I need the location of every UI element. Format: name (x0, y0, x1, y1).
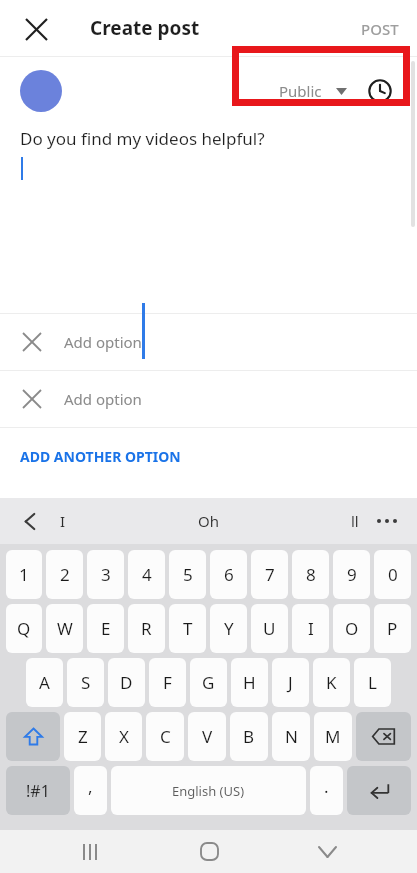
button[interactable]: X (105, 712, 142, 761)
button[interactable]: Recents (62, 830, 118, 873)
button[interactable]: L (354, 658, 391, 707)
staticText: Y (224, 617, 234, 640)
button[interactable]: 3 (87, 550, 124, 599)
staticText: Z (78, 725, 88, 748)
staticText: 3 (101, 563, 111, 586)
button[interactable]: B (230, 712, 268, 761)
button[interactable]: J (272, 658, 309, 707)
button[interactable]: !#1 (6, 766, 70, 815)
staticText: Oh (198, 511, 219, 531)
staticText: S (81, 671, 91, 694)
button[interactable]: Remove option (0, 371, 417, 427)
staticText: L (368, 671, 377, 694)
staticText: !#1 (26, 780, 50, 802)
button[interactable]: English (US) (111, 766, 306, 815)
button[interactable]: I (292, 604, 329, 653)
staticText: . (324, 775, 329, 798)
button[interactable]: Remove option (14, 324, 50, 360)
button[interactable]: Shift (6, 712, 60, 761)
button[interactable]: P (374, 604, 411, 653)
button[interactable]: S (67, 658, 104, 707)
button[interactable]: Y (210, 604, 247, 653)
staticText: H (243, 671, 256, 694)
staticText: R (141, 617, 152, 640)
staticText: 4 (142, 563, 152, 586)
button[interactable]: ADD ANOTHER OPTION (0, 428, 417, 485)
button[interactable]: D (108, 658, 145, 707)
button[interactable]: 8 (292, 550, 329, 599)
button[interactable]: H (231, 658, 268, 707)
staticText: Add option (64, 332, 142, 352)
button[interactable]: Oh (198, 498, 219, 544)
staticText: W (57, 617, 73, 640)
staticText: A (39, 671, 50, 694)
button[interactable]: 1 (6, 550, 42, 599)
staticText: C (160, 725, 171, 748)
button[interactable]: Q (6, 604, 42, 653)
button[interactable]: More options (369, 503, 405, 539)
button[interactable]: 0 (374, 550, 411, 599)
staticText: M (325, 725, 341, 748)
staticText: D (120, 671, 133, 694)
staticText: Add option (64, 389, 142, 409)
staticText: U (263, 617, 276, 640)
button[interactable]: 4 (128, 550, 165, 599)
button[interactable]: R (128, 604, 165, 653)
staticText: X (119, 725, 129, 748)
button[interactable]: Do you find my videos helpful? (0, 121, 417, 313)
button[interactable]: K (313, 658, 350, 707)
button[interactable]: G (190, 658, 227, 707)
staticText: Do you find my videos helpful? (20, 127, 265, 150)
staticText: ll (351, 511, 359, 531)
button[interactable]: Enter (347, 766, 411, 815)
button[interactable]: V (188, 712, 226, 761)
staticText: English (US) (172, 782, 245, 800)
button[interactable]: C (146, 712, 184, 761)
button[interactable]: M (314, 712, 352, 761)
button[interactable]: Remove option (14, 381, 50, 417)
button[interactable]: 2 (46, 550, 83, 599)
button[interactable]: Backspace (356, 712, 411, 761)
staticText: 8 (306, 563, 316, 586)
button[interactable]: 6 (210, 550, 247, 599)
staticText: G (202, 671, 215, 694)
staticText: I (60, 511, 66, 531)
staticText: ADD ANOTHER OPTION (20, 447, 181, 466)
staticText: J (288, 671, 293, 694)
staticText: N (285, 725, 298, 748)
button[interactable]: U (251, 604, 288, 653)
button[interactable]: 9 (333, 550, 370, 599)
staticText: 7 (265, 563, 275, 586)
button[interactable]: Previous (12, 503, 48, 539)
button[interactable]: A (26, 658, 63, 707)
staticText: 6 (224, 563, 234, 586)
button[interactable]: Home (181, 830, 237, 873)
button[interactable]: Public (275, 74, 397, 108)
staticText: Q (17, 617, 31, 640)
button[interactable]: Z (64, 712, 101, 761)
staticText: K (326, 671, 337, 694)
button[interactable]: N (272, 712, 310, 761)
button[interactable]: T (169, 604, 206, 653)
button[interactable]: O (333, 604, 370, 653)
staticText: 2 (60, 563, 70, 586)
button[interactable]: ll (351, 498, 359, 544)
staticText: V (202, 725, 213, 748)
button[interactable]: Remove option (0, 314, 417, 370)
button[interactable]: 5 (169, 550, 206, 599)
button[interactable]: , (74, 766, 107, 815)
staticText: 5 (183, 563, 193, 586)
staticText: 1 (19, 563, 29, 586)
button[interactable]: E (87, 604, 124, 653)
button[interactable]: F (149, 658, 186, 707)
button[interactable]: POST (351, 11, 409, 47)
button[interactable]: Close (14, 7, 58, 51)
button[interactable]: 7 (251, 550, 288, 599)
button[interactable]: Hide keyboard (299, 830, 355, 873)
staticText: P (387, 617, 398, 640)
button[interactable]: I (60, 498, 66, 544)
button[interactable]: . (310, 766, 343, 815)
button[interactable]: W (46, 604, 83, 653)
button[interactable]: Schedule (367, 78, 393, 104)
staticText: Public (279, 81, 322, 101)
